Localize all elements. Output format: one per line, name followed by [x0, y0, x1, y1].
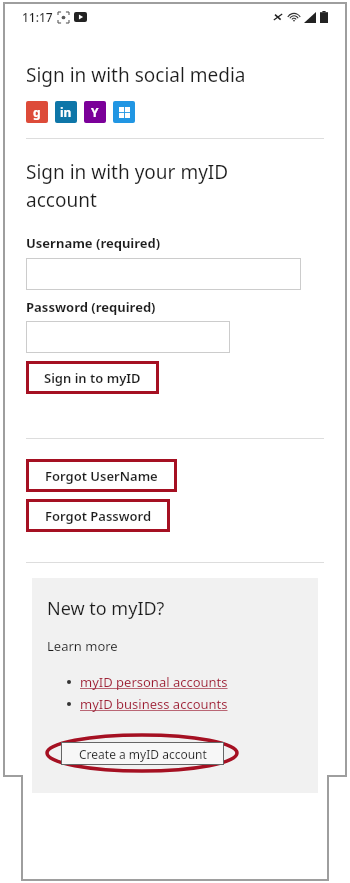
staticText: myID business accounts — [80, 695, 228, 713]
staticText: 11:17 — [22, 9, 53, 25]
staticText: Y — [91, 104, 99, 120]
staticText: Username (required) — [26, 234, 161, 252]
staticText: Forgot UserName — [45, 467, 158, 485]
button[interactable]: Sign in with LinkedIn — [55, 101, 77, 123]
staticText: myID personal accounts — [80, 673, 228, 691]
staticText: Sign in with your myID — [26, 159, 229, 185]
staticText: Create a myID account — [79, 746, 207, 762]
button[interactable]: Create a myID account — [61, 742, 224, 765]
button[interactable]: myID business accounts — [67, 695, 228, 713]
button[interactable] — [26, 321, 230, 353]
staticText: Forgot Password — [45, 507, 152, 525]
staticText: account — [26, 187, 97, 213]
button[interactable]: Forgot Password — [26, 499, 170, 532]
button[interactable] — [26, 258, 301, 290]
button[interactable]: myID personal accounts — [67, 673, 228, 691]
staticText: Sign in with social media — [26, 62, 246, 88]
staticText: Sign in to myID — [44, 369, 141, 387]
button[interactable]: Sign in with Microsoft — [113, 101, 135, 123]
button[interactable]: Forgot UserName — [26, 459, 177, 492]
button[interactable]: Sign in with Google — [26, 101, 48, 123]
button[interactable]: Sign in to myID — [26, 361, 159, 394]
button[interactable]: Sign in with Yahoo — [84, 101, 106, 123]
staticText: Password (required) — [26, 298, 156, 316]
staticText: in — [60, 104, 72, 120]
staticText: g — [33, 104, 41, 120]
staticText: Learn more — [47, 637, 118, 655]
staticText: New to myID? — [47, 596, 165, 621]
